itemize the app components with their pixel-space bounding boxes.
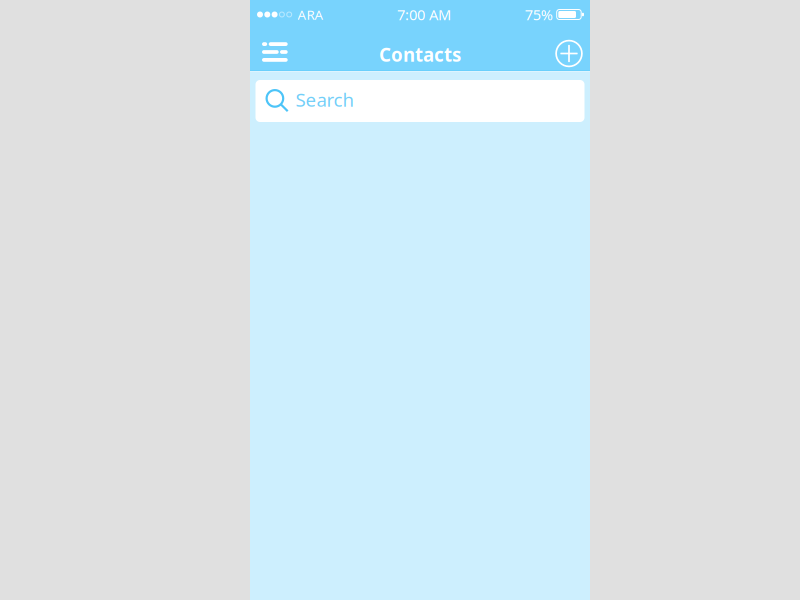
button[interactable]: Search	[255, 80, 584, 122]
button[interactable]: Menu	[250, 26, 294, 70]
staticText: 7:00 AM	[397, 5, 451, 24]
staticText: 75%	[525, 5, 553, 24]
staticText: Search	[295, 87, 354, 112]
button[interactable]: Add contact	[550, 26, 590, 70]
staticText: Contacts	[379, 42, 461, 67]
staticText: ARA	[297, 6, 323, 23]
